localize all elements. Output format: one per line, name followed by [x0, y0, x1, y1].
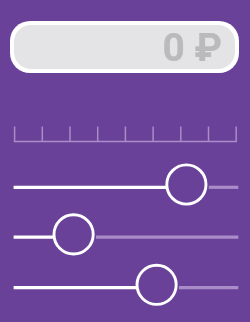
button[interactable]: 0 ₽	[14, 25, 235, 69]
button[interactable]: Slider 2	[8, 213, 242, 259]
button[interactable]: Slider 1	[8, 163, 242, 209]
staticText: 0 ₽	[162, 25, 222, 69]
button[interactable]: Slider 3	[8, 264, 242, 310]
